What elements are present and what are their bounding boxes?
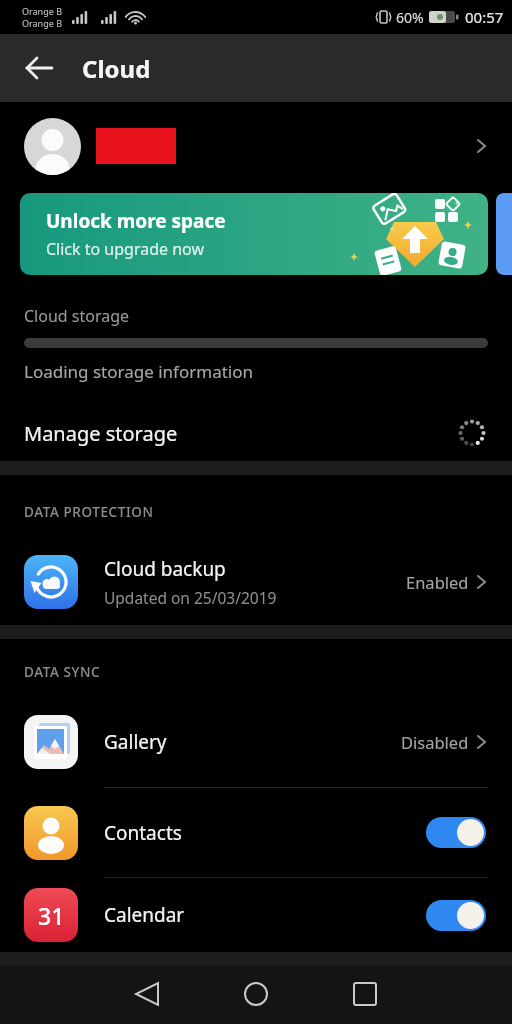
staticText: Contacts — [104, 820, 182, 846]
staticText: 60% — [396, 8, 424, 27]
staticText: Calendar — [104, 902, 185, 928]
button[interactable] — [10, 34, 68, 102]
button[interactable] — [341, 966, 512, 1024]
staticText: Orange B — [22, 17, 62, 29]
staticText: Cloud — [82, 52, 151, 85]
staticText: Gallery — [104, 729, 167, 755]
staticText: DATA SYNC — [24, 663, 101, 681]
button[interactable] — [426, 900, 486, 931]
staticText: Enabled — [406, 571, 469, 593]
staticText: 00:57 — [465, 7, 504, 27]
button[interactable]: 31 — [24, 878, 486, 952]
staticText: Cloud storage — [24, 305, 130, 327]
button[interactable] — [426, 817, 486, 848]
staticText: Loading storage information — [24, 360, 253, 383]
staticText: Orange B — [22, 5, 62, 17]
button[interactable]: Cloud backup — [24, 540, 486, 624]
staticText: Cloud backup — [104, 556, 226, 582]
staticText: Click to upgrade now — [46, 238, 205, 260]
button[interactable]: Contacts — [24, 788, 486, 877]
button[interactable]: Gallery — [24, 697, 486, 787]
staticText: DATA PROTECTION — [24, 503, 154, 521]
staticText: Unlock more space — [46, 208, 226, 234]
staticText: Manage storage — [24, 420, 178, 447]
button[interactable] — [170, 966, 341, 1024]
button[interactable]: Unlock more space — [20, 193, 488, 275]
button[interactable] — [24, 102, 486, 190]
staticText: Disabled — [401, 731, 469, 753]
staticText: Updated on 25/03/2019 — [104, 587, 277, 608]
button[interactable]: Manage storage — [24, 408, 486, 458]
staticText: 31 — [38, 900, 65, 931]
button[interactable] — [0, 966, 170, 1024]
